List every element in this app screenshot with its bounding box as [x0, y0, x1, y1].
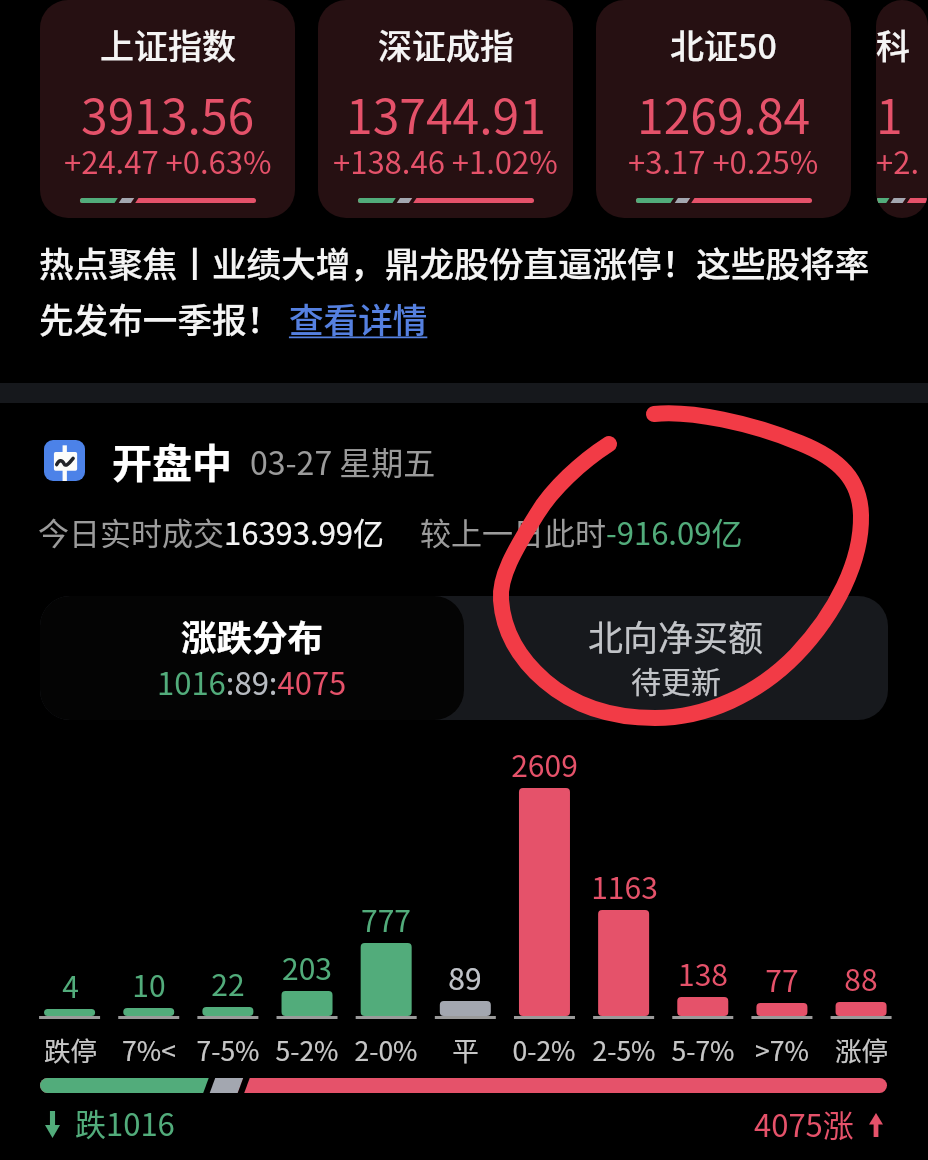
button[interactable]: 深证成指 — [318, 0, 573, 218]
other: Declining — [45, 1111, 60, 1138]
staticText: 跌停 — [44, 1030, 97, 1068]
staticText: 5-2% — [275, 1030, 339, 1068]
staticText: 4075涨 — [754, 1101, 854, 1146]
staticText: 科创50 — [876, 20, 928, 69]
staticText: 北向净买额 — [588, 610, 764, 661]
staticText: 深证成指 — [378, 20, 514, 69]
button[interactable]: 北向净买额 — [464, 596, 888, 720]
staticText: 跌1016 — [75, 1100, 175, 1145]
button[interactable]: 上证指数 — [40, 0, 295, 218]
staticText: 77 — [765, 957, 799, 1000]
staticText: 平 — [452, 1030, 479, 1068]
staticText: 777 — [361, 897, 411, 940]
staticText: 上证指数 — [100, 20, 236, 69]
staticText: +2.17 +0.15% — [876, 138, 928, 183]
staticText: 1163 — [591, 864, 658, 907]
staticText: +3.17 +0.25% — [628, 138, 819, 183]
staticText: 10 — [132, 962, 166, 1005]
staticText: 2609 — [511, 742, 578, 785]
button[interactable]: 涨跌分布 — [40, 596, 464, 720]
staticText: 2-0% — [354, 1030, 418, 1068]
staticText: 03-27 星期五 — [250, 438, 436, 484]
staticText: 1016:89:4075 — [157, 659, 347, 704]
staticText: 22 — [211, 961, 245, 1004]
staticText: 4 — [62, 963, 79, 1006]
staticText: 涨停 — [835, 1030, 888, 1068]
staticText: +138.46 +1.02% — [333, 138, 558, 183]
button[interactable]: 科创50 — [876, 0, 928, 218]
staticText: 203 — [282, 945, 332, 988]
staticText: 138 — [678, 951, 728, 994]
staticText: 1269.84 — [637, 78, 811, 148]
staticText: 2-5% — [592, 1030, 656, 1068]
staticText: 较上一日此时-916.09亿 — [420, 509, 743, 554]
button[interactable]: 热点聚焦丨业绩大增，鼎龙股份直逼涨停！这些股将率先发布一季报！ 查看详情 — [39, 237, 889, 343]
staticText: 1295.30 — [876, 78, 928, 148]
staticText: 今日实时成交16393.99亿 — [38, 509, 385, 554]
staticText: 涨跌分布 — [181, 610, 324, 661]
staticText: 热点聚焦丨业绩大增，鼎龙股份直逼涨停！这些股将率先发布一季报！ 查看详情 — [39, 237, 889, 343]
staticText: 0-2% — [512, 1030, 576, 1068]
staticText: 北证50 — [670, 20, 777, 69]
staticText: 3913.56 — [81, 78, 255, 148]
other: Advancing — [869, 1113, 883, 1137]
staticText: 89 — [448, 955, 482, 998]
staticText: +24.47 +0.63% — [64, 138, 272, 183]
button[interactable]: 北证50 — [596, 0, 851, 218]
staticText: 88 — [844, 956, 878, 999]
staticText: 开盘中 — [112, 432, 232, 490]
staticText: 7-5% — [196, 1030, 260, 1068]
staticText: 13744.91 — [346, 78, 546, 148]
other: Market status — [44, 440, 85, 481]
staticText: >7% — [755, 1030, 809, 1068]
staticText: 7%< — [122, 1030, 176, 1068]
staticText: 待更新 — [631, 658, 721, 701]
staticText: 5-7% — [671, 1030, 735, 1068]
